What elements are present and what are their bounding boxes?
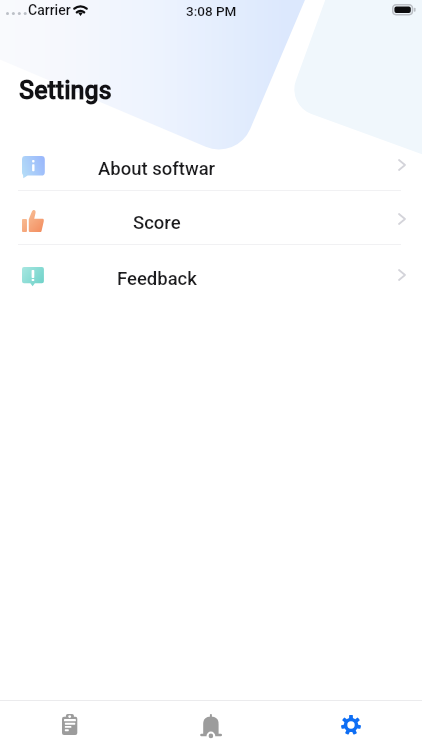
staticText: Score <box>133 212 181 234</box>
button[interactable]: Score <box>0 196 422 251</box>
button[interactable]: Settings <box>281 701 422 750</box>
staticText: Feedback <box>117 268 197 290</box>
staticText: 3:08 PM <box>186 3 237 19</box>
staticText: About softwar <box>98 158 216 180</box>
button[interactable]: About softwar <box>0 142 422 197</box>
button[interactable]: Notifications <box>140 701 281 750</box>
staticText: Settings <box>19 76 112 105</box>
button[interactable]: Tasks <box>0 701 140 750</box>
staticText: Carrier <box>28 2 71 18</box>
button[interactable]: Feedback <box>0 252 422 307</box>
